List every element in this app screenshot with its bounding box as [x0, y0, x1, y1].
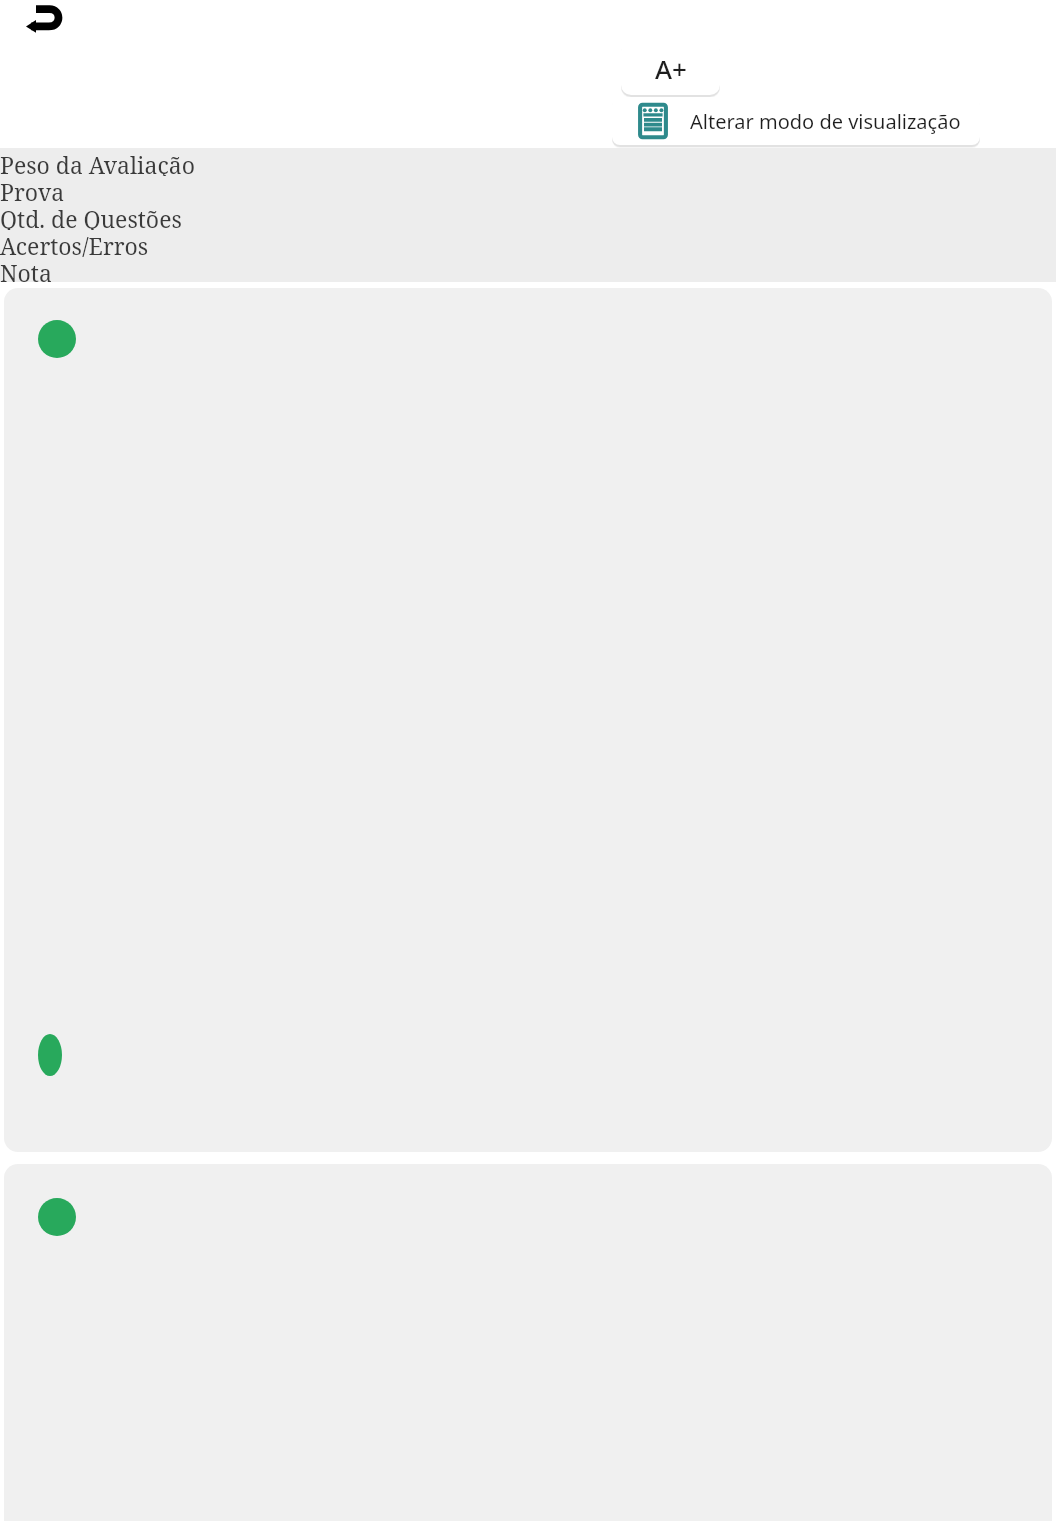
staticText: Prova: [0, 176, 65, 203]
staticText: Qtd. de Questões: [0, 203, 182, 230]
button[interactable]: [4, 1164, 1052, 1521]
staticText: Nota: [0, 257, 52, 283]
staticText: Alterar modo de visualização: [690, 108, 961, 135]
staticText: Acertos/Erros: [0, 230, 149, 257]
staticText: Peso da Avaliação: [0, 149, 195, 176]
staticText: A+: [655, 51, 687, 86]
button[interactable]: [4, 288, 1052, 1152]
button[interactable]: Voltar: [18, 0, 70, 40]
button[interactable]: Alterar modo de visualização: [612, 97, 980, 145]
